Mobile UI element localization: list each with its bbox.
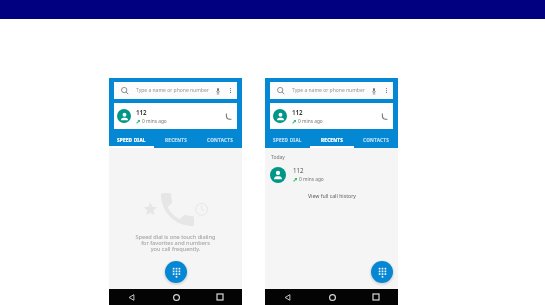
button[interactable]: CONTACTS <box>198 129 242 148</box>
staticText: 112 <box>293 166 304 174</box>
staticText: Speed dial is one touch dialing for favo… <box>109 233 242 252</box>
staticText: SPEED DIAL <box>273 137 302 143</box>
button[interactable]: Call <box>375 103 393 129</box>
button[interactable]: Back <box>109 289 154 305</box>
staticText: 112 <box>292 108 303 116</box>
staticText: 0 mins ago <box>142 118 167 125</box>
button[interactable]: RECENTS <box>154 129 198 148</box>
button[interactable]: SPEED DIAL <box>109 129 154 148</box>
staticText: 0 mins ago <box>298 118 323 125</box>
button[interactable]: Back <box>265 289 310 305</box>
button[interactable]: Call <box>219 103 237 129</box>
button[interactable]: Home <box>310 289 354 305</box>
button[interactable]: 112 <box>265 164 398 185</box>
staticText: 0 mins ago <box>299 176 324 183</box>
staticText: SPEED DIAL <box>117 137 146 143</box>
button[interactable]: CONTACTS <box>354 129 398 148</box>
button[interactable]: Open dialpad <box>371 261 393 283</box>
button[interactable]: View full call history <box>302 189 362 202</box>
staticText: Type a name or phone number <box>136 87 209 94</box>
staticText: RECENTS <box>321 137 343 143</box>
staticText: 112 <box>136 108 147 116</box>
button[interactable]: RECENTS <box>310 129 354 148</box>
staticText: CONTACTS <box>363 137 390 143</box>
button[interactable]: Home <box>154 289 198 305</box>
button[interactable]: Recent apps <box>198 289 242 305</box>
button[interactable]: Type a name or phone number <box>270 82 393 99</box>
button[interactable]: 112 <box>270 103 393 129</box>
button[interactable]: Open dialpad <box>165 261 187 283</box>
button[interactable]: Recent apps <box>354 289 398 305</box>
staticText: Today <box>271 154 285 161</box>
staticText: View full call history <box>308 192 356 199</box>
staticText: CONTACTS <box>207 137 234 143</box>
staticText: Type a name or phone number <box>292 87 365 94</box>
button[interactable]: Type a name or phone number <box>114 82 237 99</box>
staticText: RECENTS <box>165 137 187 143</box>
button[interactable]: SPEED DIAL <box>265 129 310 148</box>
button[interactable]: 112 <box>114 103 237 129</box>
